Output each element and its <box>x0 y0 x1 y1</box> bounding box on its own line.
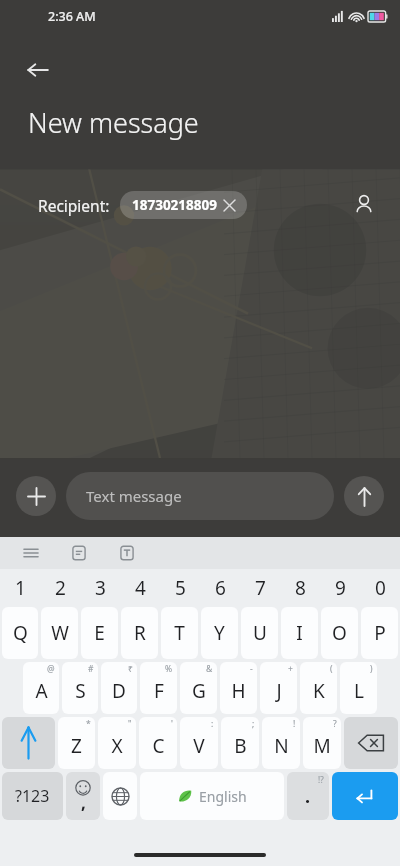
button[interactable]: Change language <box>103 772 137 820</box>
button[interactable]: 3 <box>80 569 120 607</box>
button[interactable]: W <box>41 607 78 659</box>
button[interactable]: Clipboard <box>66 540 92 566</box>
staticText: 9 <box>335 575 346 601</box>
staticText: J <box>276 678 282 704</box>
staticText: K <box>313 678 325 704</box>
staticText: Z <box>71 733 82 759</box>
staticText: S <box>75 678 86 704</box>
button[interactable]: Z <box>58 717 95 769</box>
staticText: B <box>234 733 247 759</box>
staticText: ( <box>330 663 333 675</box>
staticText: ! <box>293 718 296 730</box>
button[interactable]: Period <box>287 772 329 820</box>
staticText: L <box>354 678 364 704</box>
staticText: T <box>174 620 185 646</box>
staticText: 18730218809 <box>132 196 217 214</box>
staticText: D <box>112 678 126 704</box>
button[interactable]: 8 <box>280 569 320 607</box>
button[interactable]: P <box>361 607 398 659</box>
button[interactable]: Backspace <box>344 717 398 769</box>
staticText: - <box>250 663 253 675</box>
button[interactable]: U <box>241 607 278 659</box>
staticText: & <box>206 663 213 675</box>
button[interactable]: Choose contact <box>344 185 384 225</box>
staticText: ? <box>333 718 337 730</box>
button[interactable]: Comma and emoji <box>66 772 100 820</box>
button[interactable]: 7 <box>240 569 280 607</box>
button[interactable]: Text message <box>66 472 334 520</box>
staticText: 1 <box>15 575 26 601</box>
button[interactable]: 0 <box>360 569 400 607</box>
staticText: G <box>192 678 206 704</box>
button[interactable]: G <box>180 662 217 714</box>
button[interactable]: Menu <box>18 540 44 566</box>
button[interactable]: I <box>281 607 318 659</box>
staticText: 0 <box>375 575 386 601</box>
staticText: : <box>211 718 214 730</box>
staticText: V <box>193 733 205 759</box>
staticText: R <box>134 620 146 646</box>
staticText: P <box>374 620 386 646</box>
button[interactable]: L <box>340 662 377 714</box>
button[interactable]: N <box>262 717 300 769</box>
staticText: ) <box>370 663 373 675</box>
button[interactable]: 9 <box>320 569 360 607</box>
button[interactable]: Q <box>2 607 38 659</box>
button[interactable]: S <box>62 662 98 714</box>
button[interactable]: Add attachment <box>16 476 56 516</box>
button[interactable]: F <box>140 662 177 714</box>
button[interactable]: M <box>303 717 341 769</box>
staticText: 5 <box>175 575 186 601</box>
button[interactable]: O <box>321 607 358 659</box>
staticText: " <box>128 718 132 730</box>
button[interactable]: 18730218809 <box>120 191 247 219</box>
button[interactable]: Text style <box>114 540 140 566</box>
staticText: F <box>154 678 164 704</box>
button[interactable]: K <box>300 662 337 714</box>
staticText: ₹ <box>128 663 133 675</box>
staticText: U <box>253 620 267 646</box>
button[interactable]: Y <box>201 607 238 659</box>
staticText: ; <box>252 718 255 730</box>
button[interactable]: ?123 <box>2 772 63 820</box>
button[interactable]: H <box>220 662 257 714</box>
button[interactable]: X <box>98 717 136 769</box>
staticText: 2:36 AM <box>48 8 96 25</box>
staticText: + <box>288 663 293 675</box>
button[interactable]: Shift <box>2 717 55 769</box>
staticText: !? <box>318 774 324 785</box>
staticText: C <box>152 733 165 759</box>
staticText: # <box>88 663 94 675</box>
button[interactable]: D <box>101 662 137 714</box>
staticText: 6 <box>215 575 226 601</box>
staticText: * <box>86 718 91 730</box>
button[interactable]: 5 <box>160 569 200 607</box>
staticText: Recipient: <box>38 195 110 216</box>
button[interactable]: English <box>140 772 284 820</box>
button[interactable]: T <box>161 607 198 659</box>
button[interactable]: E <box>81 607 118 659</box>
button[interactable]: A <box>23 662 59 714</box>
staticText: X <box>111 733 123 759</box>
staticText: 2 <box>55 575 66 601</box>
staticText: New message <box>28 104 199 141</box>
button[interactable]: Enter <box>332 772 398 820</box>
button[interactable]: 4 <box>120 569 160 607</box>
staticText: E <box>94 620 105 646</box>
button[interactable]: C <box>139 717 177 769</box>
button[interactable]: Back <box>16 48 60 92</box>
button[interactable]: 6 <box>200 569 240 607</box>
button[interactable]: V <box>180 717 218 769</box>
button[interactable]: Send <box>344 476 384 516</box>
button[interactable]: R <box>121 607 158 659</box>
staticText: Q <box>13 620 28 646</box>
button[interactable]: 2 <box>40 569 80 607</box>
button[interactable]: B <box>221 717 259 769</box>
staticText: H <box>231 678 246 704</box>
staticText: A <box>35 678 48 704</box>
button[interactable]: 1 <box>0 569 40 607</box>
staticText: , <box>81 791 86 814</box>
staticText: N <box>274 733 289 759</box>
button[interactable]: J <box>260 662 297 714</box>
staticText: Y <box>214 620 225 646</box>
